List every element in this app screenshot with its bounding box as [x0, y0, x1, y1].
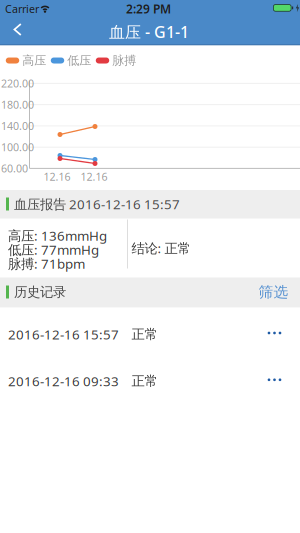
staticText: 筛选 [258, 283, 288, 301]
staticText: 140.00 [1, 119, 34, 133]
button[interactable]: Back [1, 16, 35, 43]
button[interactable]: More actions [256, 366, 292, 394]
staticText: 历史记录 [14, 284, 66, 300]
staticText: 正常 [131, 373, 157, 389]
staticText: 脉搏: 71bpm [8, 255, 85, 272]
staticText: 60.00 [1, 161, 28, 175]
staticText: 2:29 PM [126, 1, 171, 17]
staticText: 高压 [22, 53, 46, 68]
staticText: 血压 - G1-1 [109, 21, 189, 42]
staticText: Carrier [5, 2, 39, 16]
staticText: 220.00 [1, 76, 34, 90]
staticText: 血压报告 2016-12-16 15:57 [14, 195, 180, 213]
button[interactable]: 2016-12-16 09:33 [0, 354, 300, 401]
staticText: 12.16 [43, 169, 70, 184]
staticText: 180.00 [1, 97, 34, 112]
staticText: 结论: 正常 [131, 239, 190, 257]
staticText: 低压 [67, 53, 91, 68]
staticText: 低压: 77mmHg [8, 241, 99, 258]
staticText: 2016-12-16 09:33 [8, 372, 119, 390]
button[interactable]: 2016-12-16 15:57 [0, 308, 300, 354]
staticText: 100.00 [1, 140, 34, 154]
staticText: 高压: 136mmHg [8, 227, 107, 244]
staticText: 12.16 [80, 169, 107, 184]
staticText: 脉搏 [112, 53, 136, 68]
staticText: 正常 [131, 326, 157, 343]
button[interactable]: More actions [256, 319, 292, 347]
staticText: 2016-12-16 15:57 [8, 325, 119, 343]
button[interactable]: 筛选 [251, 277, 295, 307]
